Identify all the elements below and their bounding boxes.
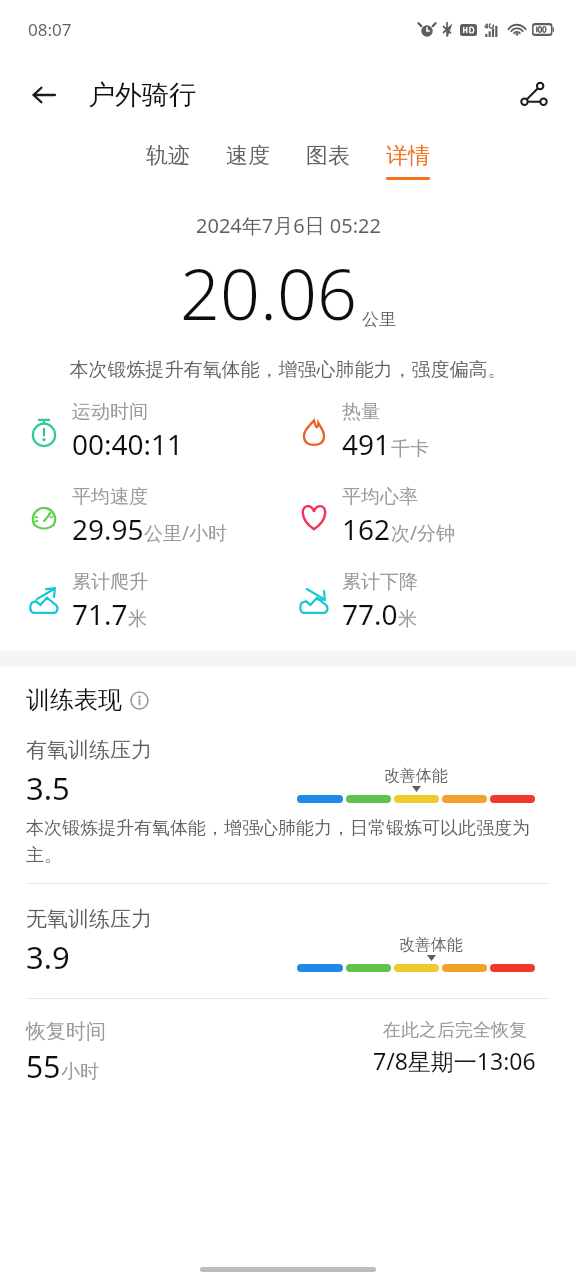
staticText: 无氧训练压力 [26,906,152,932]
staticText: 改善体能 [399,935,463,955]
staticText: 77.0 [342,595,398,633]
staticText: 改善体能 [384,766,448,786]
staticText: 00:40:11 [72,425,184,463]
other: 说明 [130,691,149,710]
staticText: 本次锻炼提升有氧体能，增强心肺能力，强度偏高。 [22,358,554,382]
staticText: 2024年7月6日 05:22 [196,212,381,239]
staticText: 千卡 [391,437,429,461]
staticText: 20.06 [180,245,357,340]
staticText: 162 [342,510,391,548]
staticText: 29.95 [72,510,144,548]
staticText: 速度 [226,142,270,170]
staticText: 491 [342,425,391,463]
staticText: 在此之后完全恢复 [383,1019,527,1042]
staticText: 累计爬升 [72,570,148,594]
staticText: 米 [128,607,147,631]
staticText: 恢复时间 [26,1019,106,1044]
staticText: 次/分钟 [391,520,456,546]
button[interactable]: 详情 [368,136,448,186]
button[interactable]: 分享 [510,71,558,119]
staticText: 公里/小时 [144,520,228,546]
staticText: 公里 [362,309,396,330]
staticText: 3.9 [26,936,70,978]
staticText: 55 [26,1046,61,1087]
staticText: 7/8星期一13:06 [373,1045,536,1076]
staticText: 图表 [306,142,350,170]
staticText: 有氧训练压力 [26,737,152,763]
staticText: 轨迹 [146,142,190,170]
staticText: 平均心率 [342,485,418,509]
staticText: 累计下降 [342,570,418,594]
button[interactable]: 训练表现 [26,685,149,715]
button[interactable]: 轨迹 [128,136,208,186]
button[interactable]: 图表 [288,136,368,186]
staticText: 米 [398,607,417,631]
staticText: 详情 [386,142,430,170]
staticText: 热量 [342,400,380,424]
staticText: 08:07 [28,18,72,41]
staticText: 平均速度 [72,485,148,509]
button[interactable]: 速度 [208,136,288,186]
staticText: 71.7 [72,595,128,633]
staticText: 小时 [61,1060,99,1084]
staticText: 3.5 [26,767,70,809]
button[interactable]: 返回 [20,71,68,119]
staticText: 户外骑行 [88,78,196,112]
staticText: 训练表现 [26,685,122,715]
staticText: 本次锻炼提升有氧体能，增强心肺能力，日常锻炼可以此强度为主。 [26,817,550,867]
staticText: 运动时间 [72,400,148,424]
